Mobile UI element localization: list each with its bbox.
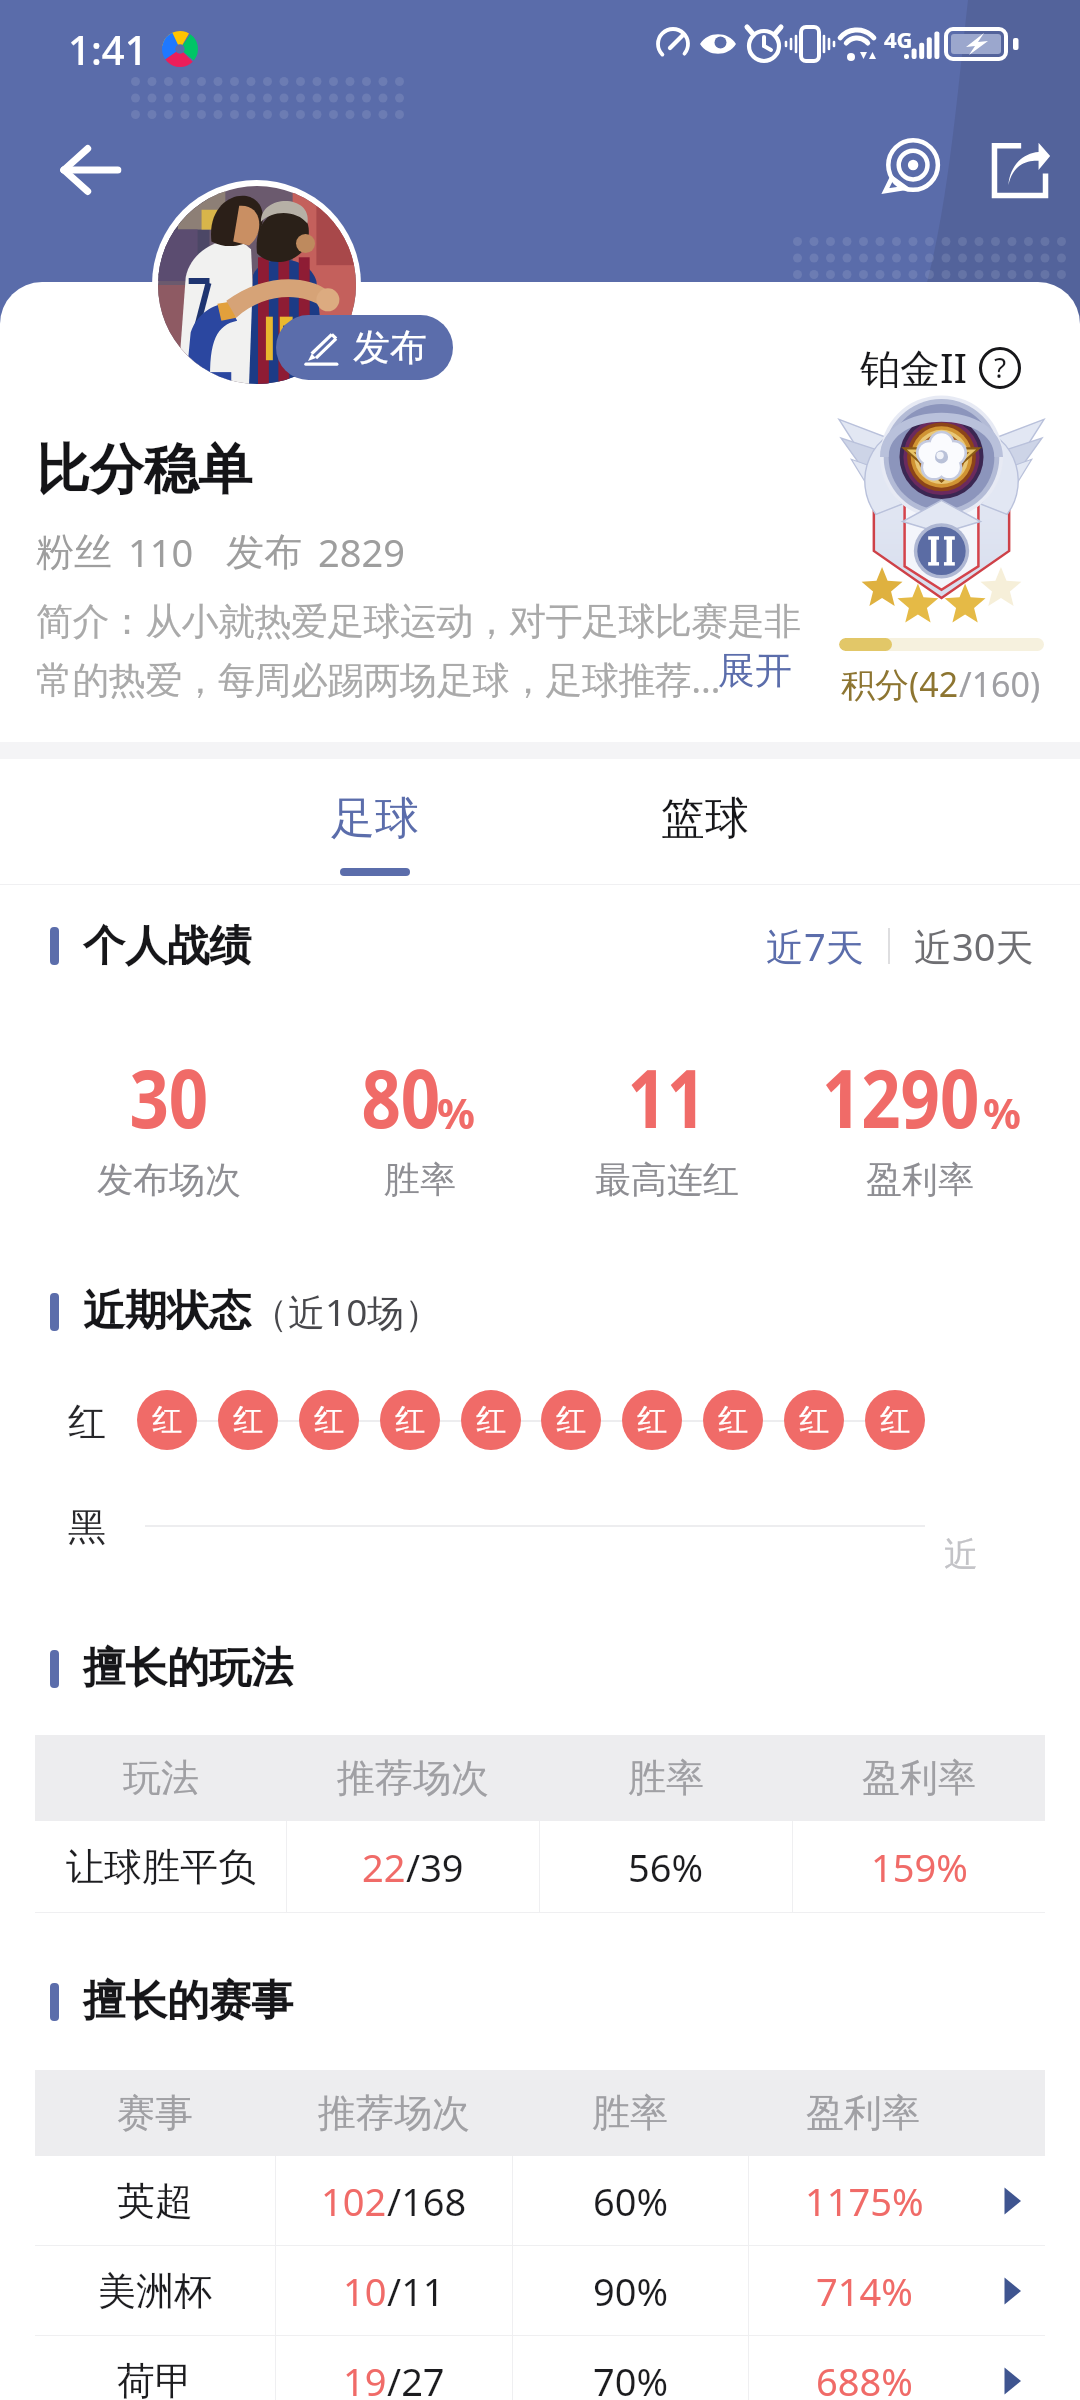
staticText: 102	[321, 2175, 387, 2227]
staticText: 发布	[353, 324, 427, 371]
staticText: 黑	[68, 1503, 106, 1551]
button[interactable]: 红	[380, 1390, 440, 1450]
staticText: 发布	[226, 528, 302, 576]
staticText: 10	[343, 2265, 387, 2317]
staticText: 简介：从小就热爱足球运动，对于足球比赛是非 常的热爱，每周必踢两场足球，足球推荐…	[36, 598, 801, 704]
button[interactable]: 近7天	[760, 912, 870, 980]
staticText: 近	[944, 1533, 978, 1576]
staticText: 擅长的赛事	[83, 1975, 293, 2028]
staticText: 擅长的玩法	[83, 1642, 293, 1695]
staticText: /11	[387, 2265, 445, 2317]
staticText: 红	[556, 1401, 586, 1439]
staticText: 19	[343, 2355, 387, 2400]
staticText: 1:41	[68, 22, 148, 76]
staticText: 714%	[816, 2265, 913, 2317]
button[interactable]: 英超	[35, 2156, 1045, 2245]
button[interactable]: 红	[784, 1390, 844, 1450]
staticText: 赛事	[117, 2089, 193, 2137]
staticText: 1175%	[805, 2175, 924, 2227]
staticText: 展开	[718, 647, 792, 694]
button[interactable]: 80	[295, 1042, 545, 1202]
staticText: /168	[387, 2175, 467, 2227]
staticText: 60%	[593, 2175, 669, 2227]
staticText: 盈利率	[806, 2089, 920, 2137]
button[interactable]: 红	[541, 1390, 601, 1450]
staticText: 盈利率	[862, 1754, 976, 1802]
staticText: 90%	[593, 2265, 669, 2317]
staticText: 红	[799, 1401, 829, 1439]
button[interactable]: 红	[218, 1390, 278, 1450]
button[interactable]: Share	[972, 122, 1068, 218]
staticText: 铂金II	[860, 340, 968, 395]
staticText: 美洲杯	[98, 2267, 212, 2315]
staticText: 56%	[628, 1841, 704, 1893]
staticText: 个人战绩	[83, 920, 251, 973]
staticText: 70%	[593, 2355, 669, 2400]
staticText: 近30天	[914, 920, 1034, 972]
staticText: 发布场次	[97, 1157, 241, 1202]
staticText: 篮球	[661, 791, 749, 846]
button[interactable]: Back	[42, 122, 138, 218]
button[interactable]: 30	[44, 1042, 294, 1202]
button[interactable]: 红	[461, 1390, 521, 1450]
button[interactable]: 近30天	[908, 912, 1040, 980]
staticText: 积分(42	[841, 661, 959, 707]
staticText: 近期状态	[83, 1285, 251, 1338]
button[interactable]: 红	[865, 1390, 925, 1450]
staticText: （近10场）	[251, 1286, 442, 1337]
button[interactable]: User avatar	[152, 180, 361, 389]
staticText: /27	[387, 2355, 445, 2400]
staticText: 红	[880, 1401, 910, 1439]
staticText: 1290	[822, 1042, 980, 1151]
staticText: 红	[314, 1401, 344, 1439]
staticText: 2829	[318, 526, 405, 578]
staticText: 近7天	[766, 920, 864, 972]
button[interactable]: 荷甲	[35, 2336, 1045, 2400]
staticText: 红	[718, 1401, 748, 1439]
staticText: 推荐场次	[337, 1754, 489, 1802]
staticText: 红	[233, 1401, 263, 1439]
button[interactable]: 红	[703, 1390, 763, 1450]
staticText: 最高连红	[595, 1157, 739, 1202]
staticText: 让球胜平负	[66, 1843, 256, 1891]
staticText: 足球	[331, 791, 419, 846]
button[interactable]: Message	[862, 122, 958, 218]
button[interactable]: 红	[137, 1390, 197, 1450]
staticText: 粉丝	[36, 528, 112, 576]
button[interactable]: 11	[542, 1042, 792, 1202]
button[interactable]: 足球	[280, 759, 470, 885]
staticText: 红	[152, 1401, 182, 1439]
staticText: 红	[395, 1401, 425, 1439]
staticText: 推荐场次	[318, 2089, 470, 2137]
staticText: 荷甲	[117, 2357, 193, 2400]
button[interactable]: 让球胜平负	[35, 1821, 1045, 1912]
staticText: 比分稳单	[36, 436, 252, 504]
staticText: 159%	[871, 1841, 968, 1893]
button[interactable]: 红	[622, 1390, 682, 1450]
button[interactable]: Rank help	[978, 346, 1022, 390]
staticText: 红	[68, 1398, 106, 1446]
staticText: 盈利率	[866, 1157, 974, 1202]
staticText: 红	[637, 1401, 667, 1439]
staticText: 80	[361, 1042, 440, 1151]
staticText: 胜率	[384, 1157, 456, 1202]
button[interactable]: 展开	[718, 647, 792, 694]
button[interactable]: 篮球	[610, 759, 800, 885]
staticText: 英超	[117, 2177, 193, 2225]
button[interactable]: 发布	[276, 315, 453, 380]
staticText: 688%	[816, 2355, 913, 2400]
staticText: /39	[406, 1841, 464, 1893]
staticText: /160)	[959, 661, 1041, 707]
staticText: ?	[994, 348, 1007, 386]
button[interactable]: 1290	[795, 1042, 1045, 1202]
staticText: 22	[362, 1841, 406, 1893]
staticText: 胜率	[628, 1754, 704, 1802]
staticText: 玩法	[123, 1754, 199, 1802]
button[interactable]: 美洲杯	[35, 2246, 1045, 2335]
staticText: 30	[129, 1042, 208, 1151]
button[interactable]: 红	[299, 1390, 359, 1450]
staticText: 11	[627, 1042, 706, 1151]
staticText: 红	[476, 1401, 506, 1439]
staticText: 110	[128, 526, 194, 578]
staticText: %	[437, 1084, 475, 1141]
